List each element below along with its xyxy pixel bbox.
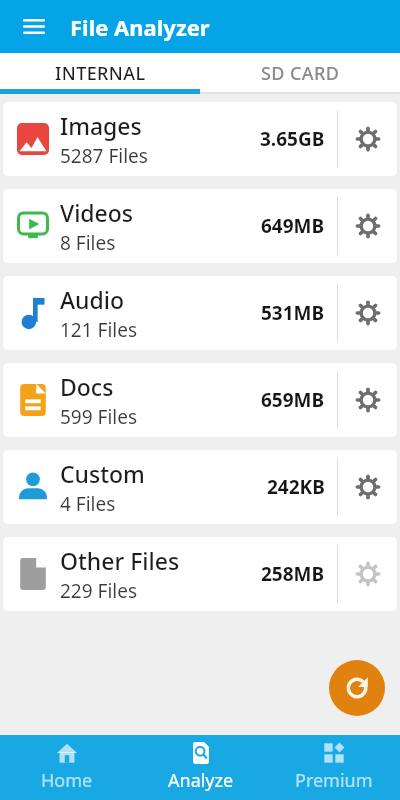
staticText: 5287 Files: [60, 143, 148, 169]
button[interactable]: [338, 276, 397, 350]
button[interactable]: Analyze: [134, 735, 267, 800]
button[interactable]: Images: [3, 102, 397, 176]
staticText: 242KB: [267, 474, 325, 500]
button[interactable]: Home: [0, 735, 134, 800]
button[interactable]: [338, 450, 397, 524]
staticText: 258MB: [261, 561, 325, 587]
staticText: 121 Files: [60, 317, 138, 343]
button[interactable]: [329, 660, 385, 716]
staticText: File Analyzer: [70, 12, 210, 42]
button[interactable]: [338, 363, 397, 437]
staticText: Audio: [60, 284, 125, 315]
button[interactable]: [0, 0, 53, 53]
button[interactable]: Other Files: [3, 537, 397, 611]
staticText: Custom: [60, 458, 145, 489]
staticText: Docs: [60, 371, 114, 402]
staticText: Premium: [295, 768, 373, 793]
staticText: 8 Files: [60, 230, 116, 256]
staticText: Home: [41, 768, 93, 793]
staticText: Videos: [60, 197, 134, 228]
button[interactable]: Premium: [267, 735, 400, 800]
button[interactable]: Custom: [3, 450, 397, 524]
staticText: 659MB: [261, 387, 325, 413]
staticText: 599 Files: [60, 404, 138, 430]
button[interactable]: Videos: [3, 189, 397, 263]
button[interactable]: [338, 537, 397, 611]
button[interactable]: [338, 102, 397, 176]
staticText: Other Files: [60, 545, 180, 576]
staticText: 649MB: [261, 213, 325, 239]
staticText: 229 Files: [60, 578, 138, 604]
button[interactable]: [338, 189, 397, 263]
staticText: 4 Files: [60, 491, 116, 517]
staticText: INTERNAL: [55, 61, 146, 86]
staticText: 531MB: [261, 300, 325, 326]
button[interactable]: Docs: [3, 363, 397, 437]
button[interactable]: INTERNAL: [0, 53, 200, 94]
staticText: 3.65GB: [260, 126, 325, 152]
staticText: SD CARD: [261, 61, 340, 86]
staticText: Images: [60, 110, 142, 141]
button[interactable]: SD CARD: [200, 53, 400, 94]
button[interactable]: Audio: [3, 276, 397, 350]
staticText: Analyze: [168, 768, 234, 793]
